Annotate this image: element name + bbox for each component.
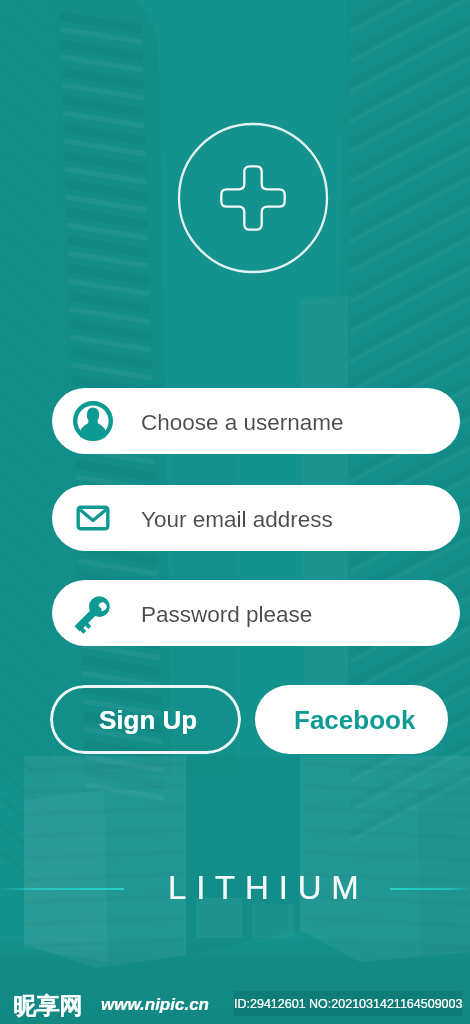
staticText: Password please — [141, 602, 313, 627]
button[interactable]: Add photo — [177, 122, 329, 274]
staticText: Your email address — [141, 507, 333, 532]
staticText: 昵享网 — [13, 992, 82, 1021]
button[interactable]: Facebook — [255, 685, 448, 754]
staticText: LITHIUM — [168, 869, 369, 906]
staticText: ID:29412601 NO:20210314211645090032 — [234, 997, 462, 1011]
button[interactable]: Choose a username — [52, 388, 460, 454]
staticText: Sign Up — [99, 705, 198, 734]
staticText: Facebook — [294, 705, 416, 734]
button[interactable]: Password please — [52, 580, 460, 646]
button[interactable]: Sign Up — [50, 685, 241, 754]
staticText: www.nipic.cn — [101, 995, 209, 1014]
staticText: Choose a username — [141, 410, 344, 435]
button[interactable]: Your email address — [52, 485, 460, 551]
